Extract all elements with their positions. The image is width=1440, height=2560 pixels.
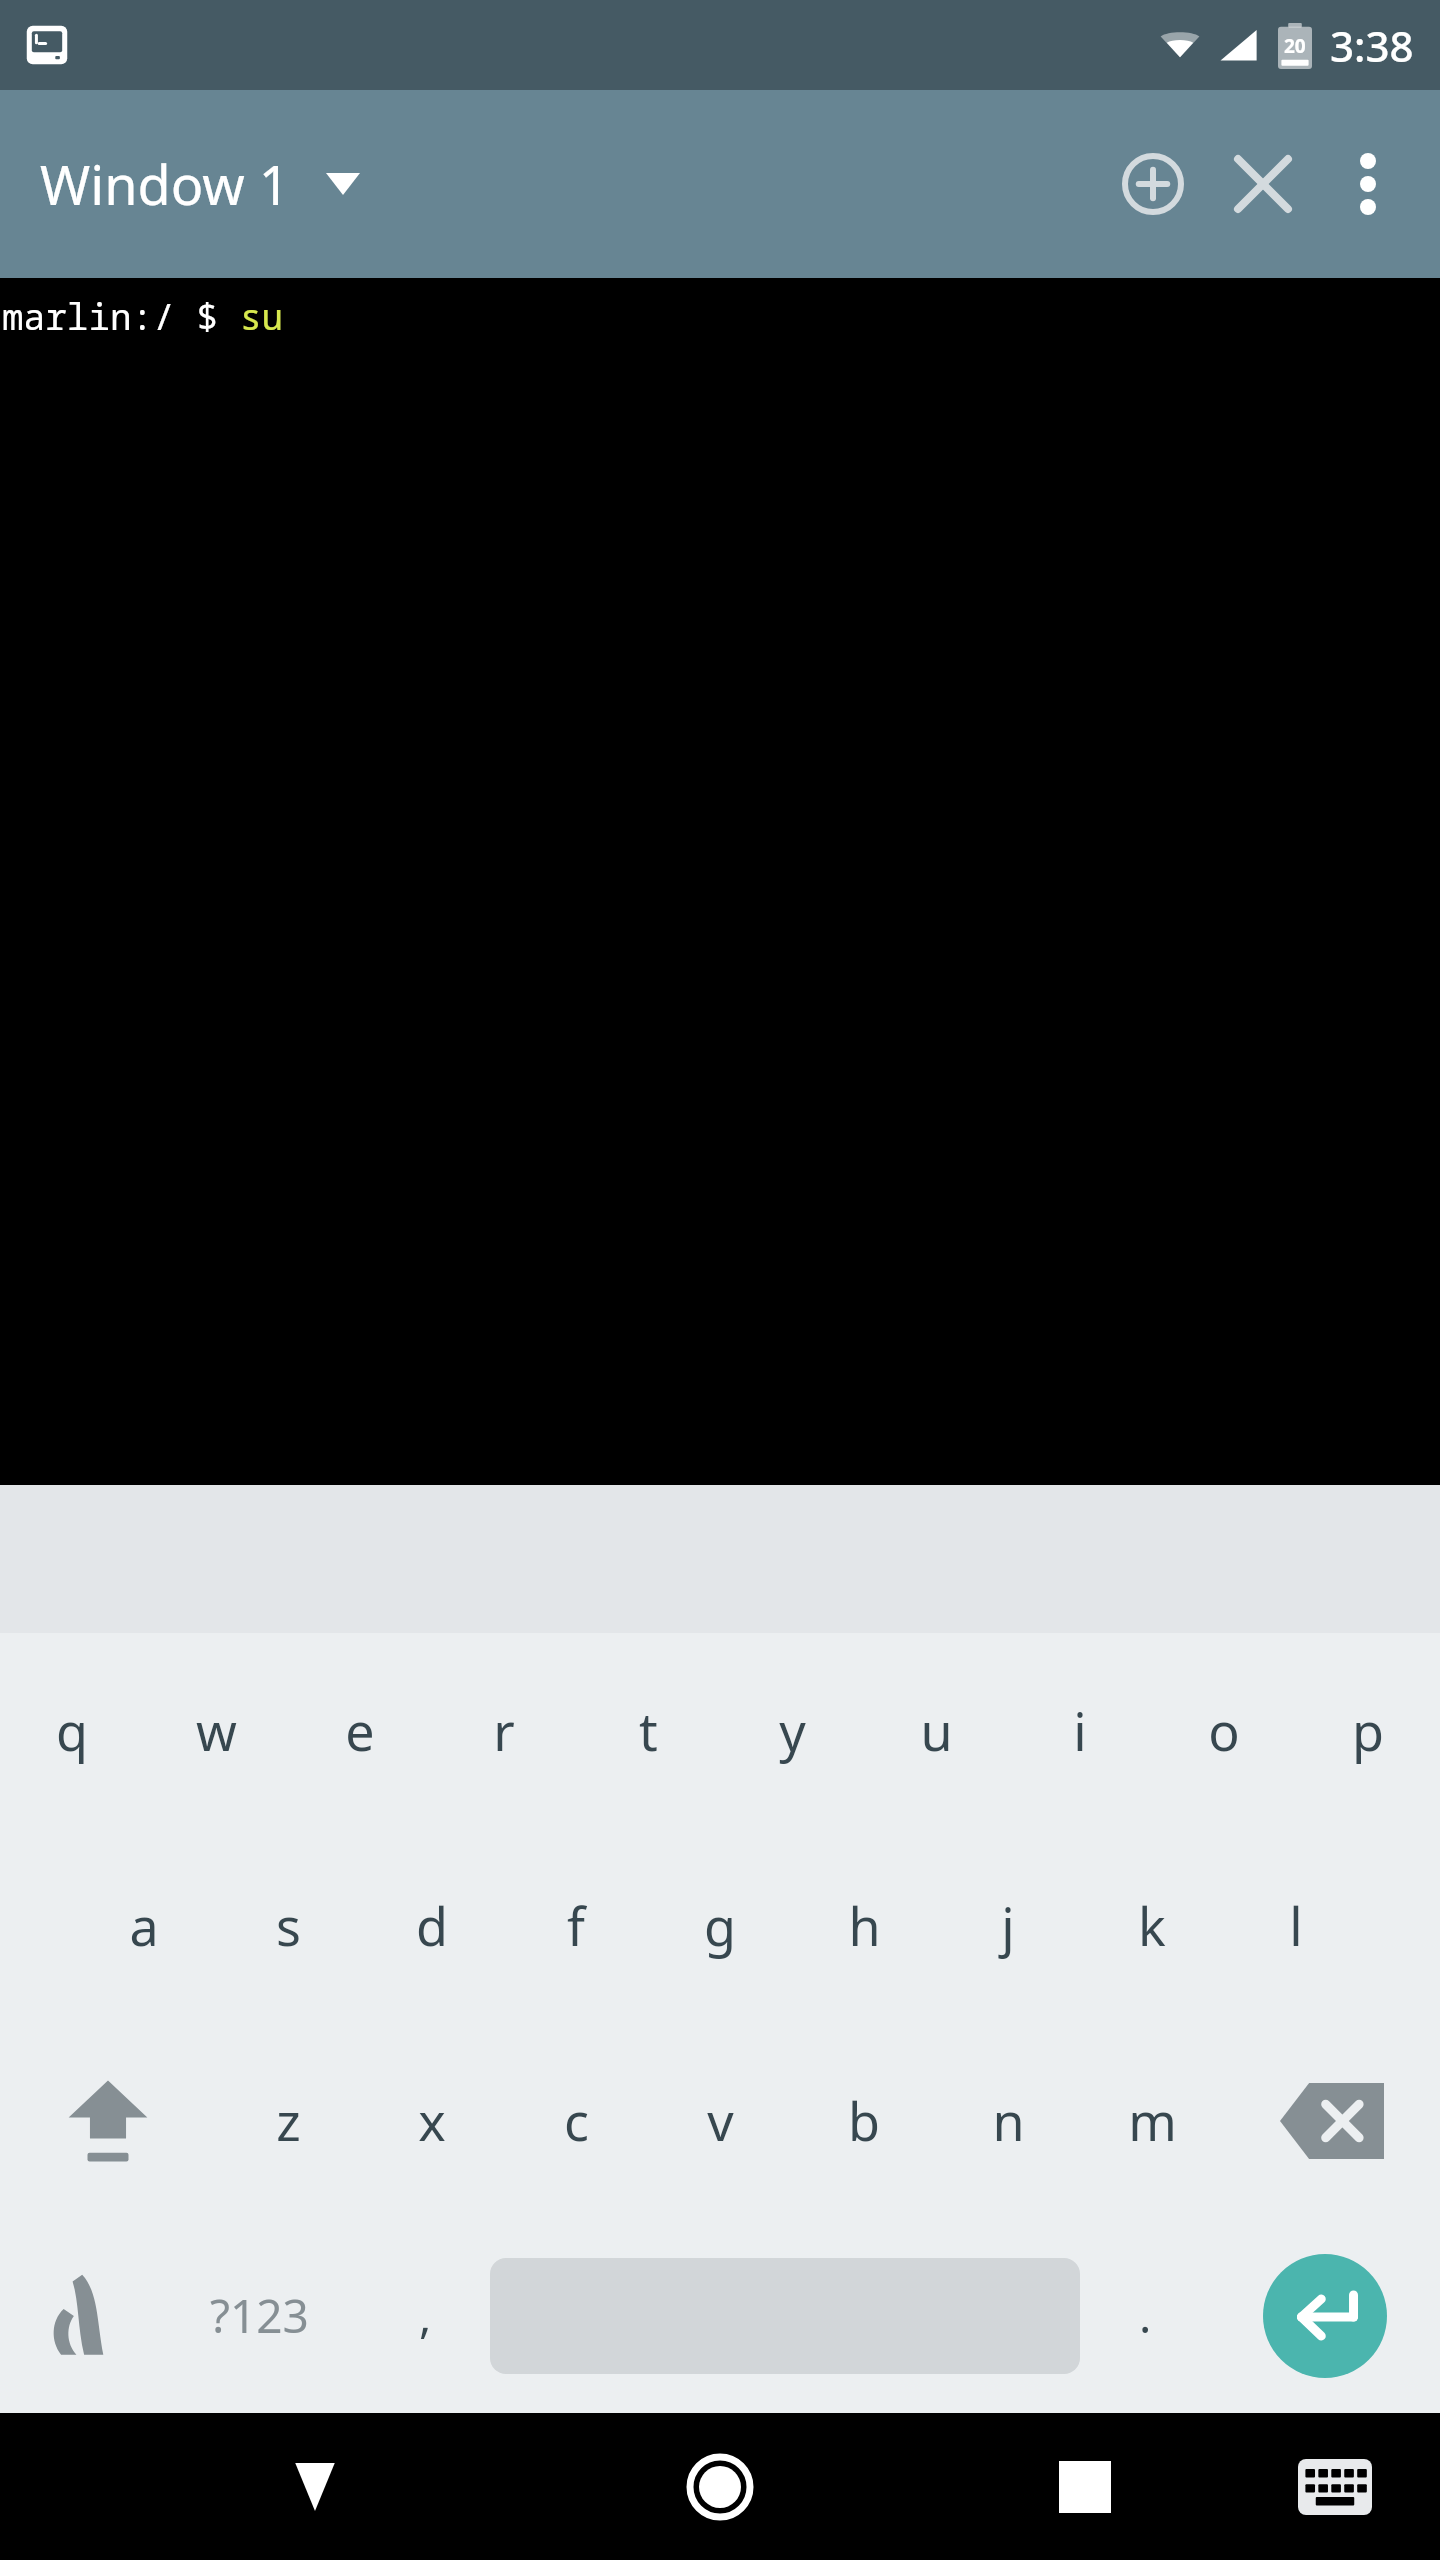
staticText: b — [848, 2085, 880, 2156]
staticText: o — [1208, 1695, 1240, 1766]
button[interactable]: f — [504, 1828, 648, 2023]
staticText: n — [992, 2085, 1025, 2156]
button[interactable]: q — [0, 1633, 144, 1828]
button[interactable] — [490, 2218, 1080, 2413]
staticText: w — [196, 1695, 237, 1766]
button[interactable]: o — [1152, 1633, 1296, 1828]
staticText: e — [345, 1695, 375, 1766]
button[interactable]: x — [360, 2023, 504, 2218]
staticText: , — [419, 2284, 432, 2347]
button[interactable]: i — [1008, 1633, 1152, 1828]
staticText: i — [1073, 1695, 1087, 1766]
button[interactable]: g — [648, 1828, 792, 2023]
button[interactable]: ?123 — [158, 2218, 360, 2413]
staticText: marlin:/ $ — [2, 292, 240, 341]
button[interactable]: Backspace — [1224, 2023, 1440, 2218]
button[interactable]: marlin:/ $ — [0, 278, 1440, 1485]
button[interactable]: k — [1080, 1828, 1224, 2023]
staticText: l — [1289, 1890, 1303, 1961]
button[interactable]: n — [936, 2023, 1080, 2218]
staticText: c — [564, 2085, 589, 2156]
button[interactable]: a — [72, 1828, 216, 2023]
staticText: q — [56, 1695, 88, 1766]
staticText: s — [276, 1890, 301, 1961]
button[interactable]: Shift — [0, 2023, 216, 2218]
button[interactable]: e — [288, 1633, 432, 1828]
staticText: x — [418, 2085, 446, 2156]
button[interactable]: c — [504, 2023, 648, 2218]
button[interactable]: p — [1296, 1633, 1440, 1828]
staticText: 20 — [1284, 33, 1306, 59]
button[interactable]: z — [216, 2023, 360, 2218]
button[interactable]: m — [1080, 2023, 1224, 2218]
button[interactable]: u — [864, 1633, 1008, 1828]
button[interactable]: y — [720, 1633, 864, 1828]
button[interactable]: Window 1 — [40, 147, 360, 221]
staticText: a — [129, 1890, 159, 1961]
staticText: ?123 — [210, 2284, 309, 2347]
staticText: j — [1001, 1890, 1015, 1961]
staticText: k — [1138, 1890, 1166, 1961]
button[interactable]: r — [432, 1633, 576, 1828]
staticText: r — [493, 1695, 515, 1766]
button[interactable]: Switch keyboard — [1280, 2432, 1390, 2542]
staticText: p — [1352, 1695, 1384, 1766]
button[interactable]: Recent apps — [1020, 2422, 1150, 2552]
staticText: g — [704, 1890, 736, 1961]
button[interactable]: Home — [655, 2422, 785, 2552]
staticText: h — [848, 1890, 881, 1961]
staticText: su — [240, 292, 284, 341]
button[interactable]: , — [360, 2218, 490, 2413]
button[interactable]: d — [360, 1828, 504, 2023]
staticText: t — [639, 1695, 658, 1766]
button[interactable]: j — [936, 1828, 1080, 2023]
staticText: y — [779, 1695, 806, 1766]
button[interactable]: New window — [1098, 129, 1208, 239]
staticText: f — [567, 1890, 585, 1961]
button[interactable]: Back — [250, 2422, 380, 2552]
button[interactable]: . — [1080, 2218, 1210, 2413]
button[interactable]: v — [648, 2023, 792, 2218]
button[interactable]: Close window — [1208, 129, 1318, 239]
staticText: . — [1139, 2284, 1152, 2347]
button[interactable]: More options — [1318, 134, 1418, 234]
staticText: u — [920, 1695, 953, 1766]
button[interactable]: Enter — [1210, 2218, 1440, 2413]
button[interactable]: h — [792, 1828, 936, 2023]
button[interactable]: b — [792, 2023, 936, 2218]
staticText: d — [416, 1890, 448, 1961]
button[interactable]: t — [576, 1633, 720, 1828]
staticText: m — [1128, 2085, 1177, 2156]
staticText: 3:38 — [1330, 17, 1414, 74]
button[interactable]: w — [144, 1633, 288, 1828]
staticText: z — [276, 2085, 301, 2156]
button[interactable]: l — [1224, 1828, 1368, 2023]
button[interactable]: s — [216, 1828, 360, 2023]
staticText: Window 1 — [40, 147, 290, 221]
staticText: v — [707, 2085, 734, 2156]
button[interactable]: Handwriting input — [0, 2218, 158, 2413]
